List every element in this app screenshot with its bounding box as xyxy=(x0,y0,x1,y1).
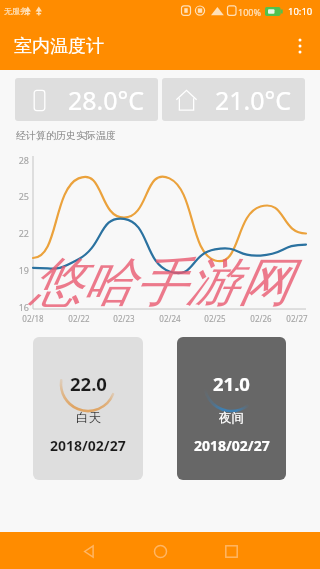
staticText: 02/22 xyxy=(59,313,99,324)
button[interactable]: More options xyxy=(280,26,320,66)
staticText: 100% xyxy=(238,6,261,18)
button[interactable]: Back xyxy=(74,536,104,566)
staticText: 悠哈手游网 xyxy=(30,250,290,316)
staticText: 2018/02/27 xyxy=(50,436,126,455)
staticText: 22 xyxy=(12,227,29,239)
staticText: 25 xyxy=(12,190,29,202)
button[interactable]: 22.0 xyxy=(33,337,143,480)
staticText: 夜间 xyxy=(219,410,244,426)
staticText: 22.0 xyxy=(70,371,107,396)
staticText: 无服务 xyxy=(4,6,28,16)
staticText: 02/27 xyxy=(277,313,317,324)
staticText: 02/25 xyxy=(195,313,235,324)
staticText: 室内温度计 xyxy=(14,35,104,58)
staticText: 白天 xyxy=(76,410,101,426)
staticText: 10:10 xyxy=(288,5,313,18)
button[interactable]: 28.0°C xyxy=(15,78,158,121)
staticText: 02/23 xyxy=(104,313,144,324)
staticText: 28 xyxy=(12,154,29,166)
staticText: 21.0 xyxy=(213,371,250,396)
staticText: 2018/02/27 xyxy=(194,436,270,455)
button[interactable]: 21.0 xyxy=(177,337,286,480)
button[interactable]: 21.0°C xyxy=(162,78,305,121)
button[interactable]: Home xyxy=(145,536,175,566)
staticText: 21.0°C xyxy=(215,83,292,117)
staticText: 28.0°C xyxy=(68,83,145,117)
button[interactable]: Recent apps xyxy=(216,536,246,566)
staticText: 02/24 xyxy=(150,313,190,324)
staticText: 经计算的历史实际温度 xyxy=(16,129,116,142)
staticText: 02/18 xyxy=(13,313,53,324)
staticText: 16 xyxy=(12,301,29,313)
staticText: 02/26 xyxy=(241,313,281,324)
staticText: 19 xyxy=(12,264,29,276)
